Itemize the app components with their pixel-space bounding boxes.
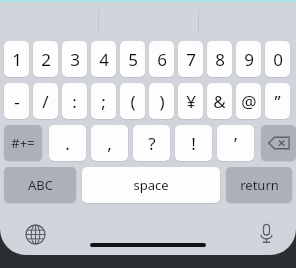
staticText: 5: [128, 48, 138, 71]
staticText: 2: [41, 48, 51, 71]
staticText: (: [130, 90, 136, 113]
staticText: 9: [244, 48, 254, 71]
staticText: ,: [107, 132, 112, 155]
button[interactable]: 7: [178, 41, 203, 77]
staticText: 0: [273, 48, 283, 71]
staticText: 7: [186, 48, 196, 71]
button[interactable]: 6: [149, 41, 174, 77]
staticText: !: [191, 132, 196, 155]
staticText: 4: [99, 48, 109, 71]
button[interactable]: ”: [265, 83, 290, 119]
button[interactable]: .: [49, 125, 86, 161]
button[interactable]: /: [33, 83, 58, 119]
staticText: ABC: [28, 176, 53, 194]
staticText: return: [240, 176, 279, 194]
button[interactable]: Backspace: [261, 125, 296, 161]
staticText: @: [241, 90, 257, 113]
button[interactable]: 3: [62, 41, 87, 77]
button[interactable]: ?: [133, 125, 170, 161]
button[interactable]: :: [62, 83, 87, 119]
staticText: 8: [215, 48, 225, 71]
button[interactable]: ): [149, 83, 174, 119]
button[interactable]: ,: [91, 125, 128, 161]
button[interactable]: space: [82, 167, 220, 203]
button[interactable]: ABC: [4, 167, 76, 203]
staticText: :: [72, 90, 77, 113]
staticText: #+=: [11, 134, 35, 152]
staticText: &: [213, 90, 226, 113]
button[interactable]: !: [175, 125, 212, 161]
button[interactable]: return: [226, 167, 292, 203]
button[interactable]: ¥: [178, 83, 203, 119]
staticText: space: [133, 176, 169, 194]
staticText: .: [65, 132, 70, 155]
staticText: 6: [157, 48, 167, 71]
staticText: ’: [234, 132, 237, 155]
staticText: 3: [70, 48, 80, 71]
button[interactable]: Dictation: [253, 220, 279, 246]
button[interactable]: ’: [217, 125, 254, 161]
button[interactable]: 4: [91, 41, 116, 77]
staticText: ?: [148, 132, 156, 155]
staticText: -: [14, 90, 20, 113]
staticText: ;: [101, 90, 106, 113]
button[interactable]: ;: [91, 83, 116, 119]
button[interactable]: Change keyboard language: [22, 221, 48, 247]
button[interactable]: -: [4, 83, 29, 119]
button[interactable]: 0: [265, 41, 290, 77]
staticText: ”: [274, 90, 281, 113]
button[interactable]: @: [236, 83, 261, 119]
button[interactable]: 5: [120, 41, 145, 77]
button[interactable]: #+=: [4, 125, 42, 161]
button[interactable]: 8: [207, 41, 232, 77]
staticText: /: [42, 90, 49, 113]
staticText: ¥: [186, 90, 196, 113]
staticText: ): [159, 90, 165, 113]
button[interactable]: 9: [236, 41, 261, 77]
button[interactable]: 1: [4, 41, 29, 77]
button[interactable]: 2: [33, 41, 58, 77]
staticText: 1: [12, 48, 22, 71]
button[interactable]: &: [207, 83, 232, 119]
button[interactable]: (: [120, 83, 145, 119]
